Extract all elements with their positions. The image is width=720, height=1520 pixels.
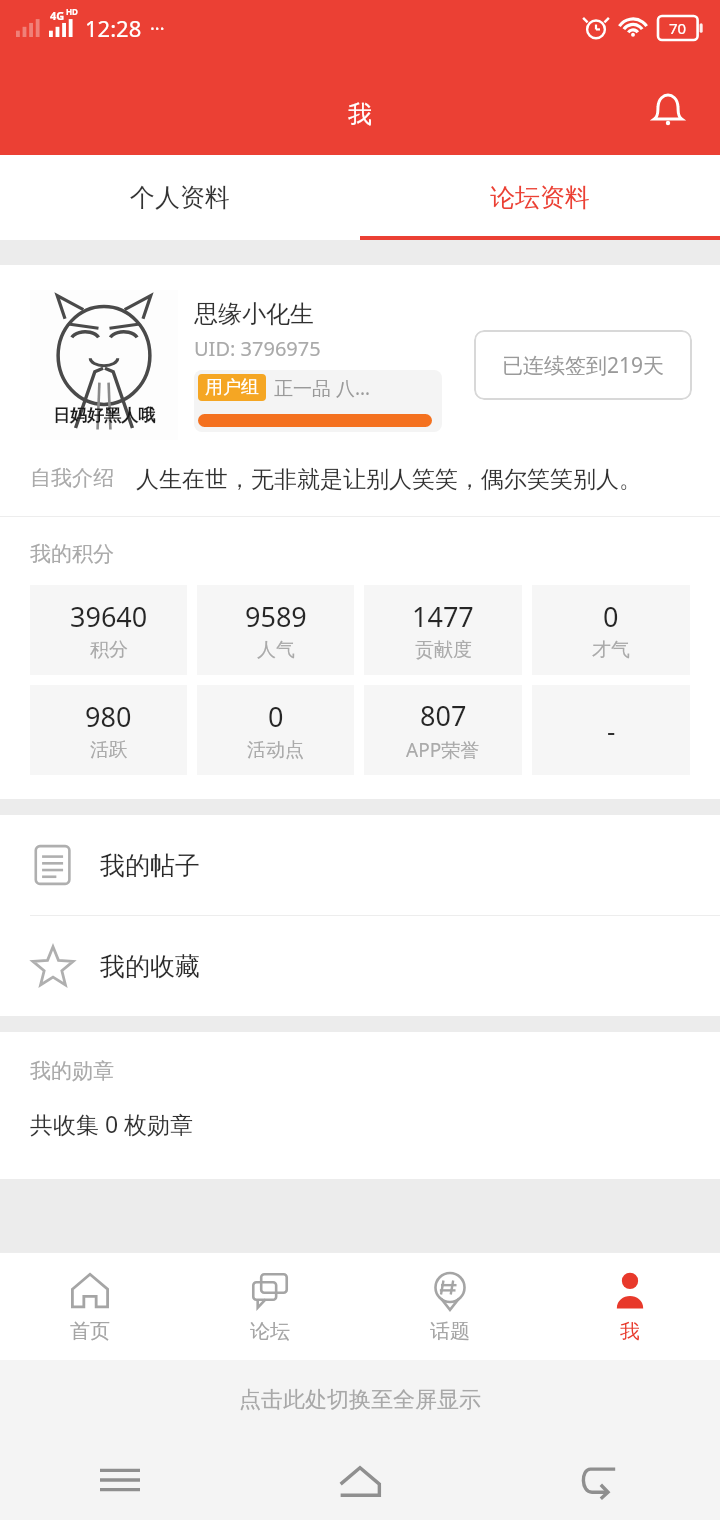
staticText: 0	[268, 698, 284, 735]
staticText: UID: 3796975	[194, 335, 321, 362]
button[interactable]: Back	[480, 1450, 720, 1510]
staticText: 论坛资料	[490, 182, 590, 213]
staticText: 贡献度	[415, 638, 472, 662]
staticText: 我的勋章	[30, 1058, 114, 1084]
staticText: 才气	[592, 638, 630, 662]
staticText: 我	[348, 99, 372, 129]
button[interactable]: 我的帖子	[0, 815, 720, 915]
button[interactable]: 9589	[197, 585, 354, 675]
staticText: 我的积分	[30, 541, 114, 567]
staticText: 9589	[245, 598, 307, 635]
staticText: 1477	[412, 598, 474, 635]
button[interactable]: 日妈好黑人哦	[0, 265, 720, 465]
staticText: 4G	[50, 8, 65, 23]
staticText: 共收集 0 枚勋章	[30, 1108, 194, 1139]
button[interactable]: Notifications	[638, 81, 698, 141]
button[interactable]: 我	[540, 1252, 720, 1360]
staticText: 0	[603, 598, 619, 635]
staticText: 人生在世，无非就是让别人笑笑，偶尔笑笑别人。	[136, 465, 642, 494]
staticText: -	[607, 713, 616, 748]
button[interactable]: Home	[240, 1450, 480, 1510]
staticText: 思缘小化生	[194, 299, 314, 329]
staticText: 人气	[257, 638, 295, 662]
staticText: 活跃	[90, 738, 128, 762]
staticText: 12:28	[85, 13, 142, 43]
staticText: 活动点	[247, 738, 304, 762]
staticText: 70	[669, 18, 687, 38]
button[interactable]: 39640	[30, 585, 187, 675]
staticText: 首页	[70, 1319, 110, 1344]
staticText: 我	[620, 1319, 640, 1344]
staticText: 我的帖子	[100, 850, 200, 881]
staticText: 用户组	[205, 376, 259, 399]
button[interactable]: -	[532, 685, 690, 775]
staticText: 807	[420, 697, 467, 734]
button[interactable]: 论坛资料	[360, 155, 720, 240]
button[interactable]: 用户组	[194, 370, 442, 432]
button[interactable]: 点击此处切换至全屏显示	[239, 1386, 481, 1414]
button[interactable]: 个人资料	[0, 155, 360, 240]
staticText: 已连续签到219天	[502, 351, 665, 380]
staticText: ···	[150, 16, 165, 41]
button[interactable]: 807	[364, 685, 522, 775]
button[interactable]: 已连续签到219天	[474, 330, 692, 400]
button[interactable]: 首页	[0, 1252, 180, 1360]
staticText: 个人资料	[130, 182, 230, 213]
button[interactable]: 论坛	[180, 1252, 360, 1360]
staticText: 积分	[90, 638, 128, 662]
staticText: 论坛	[250, 1319, 290, 1344]
staticText: 话题	[430, 1319, 470, 1344]
button[interactable]: 我的收藏	[0, 916, 720, 1016]
button[interactable]: 0	[197, 685, 354, 775]
staticText: HD	[66, 6, 78, 17]
button[interactable]: 1477	[364, 585, 522, 675]
staticText: 我的收藏	[100, 951, 200, 982]
staticText: 正一品 八…	[274, 375, 370, 401]
button[interactable]: Recents	[0, 1450, 240, 1510]
staticText: 自我介绍	[30, 465, 114, 491]
button[interactable]: 话题	[360, 1252, 540, 1360]
staticText: 日妈好黑人哦	[53, 405, 155, 426]
button[interactable]: 980	[30, 685, 187, 775]
staticText: APP荣誉	[406, 737, 480, 763]
button[interactable]: 0	[532, 585, 690, 675]
staticText: 39640	[70, 598, 148, 635]
staticText: 980	[85, 698, 132, 735]
